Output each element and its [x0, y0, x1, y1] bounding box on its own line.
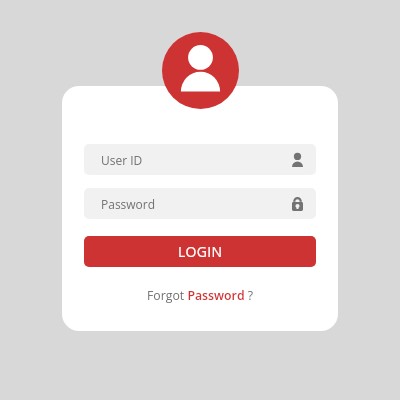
staticText: LOGIN [178, 242, 223, 261]
staticText: Password [101, 196, 292, 212]
other: User [292, 153, 303, 167]
other: Password [292, 197, 303, 211]
staticText: Forgot Password ? [147, 287, 254, 304]
button[interactable]: User ID [84, 144, 316, 175]
staticText: User ID [101, 152, 292, 168]
button[interactable]: LOGIN [84, 236, 316, 267]
button[interactable]: Forgot Password ? [141, 283, 260, 308]
other: Profile [162, 32, 239, 109]
button[interactable]: Password [84, 188, 316, 219]
